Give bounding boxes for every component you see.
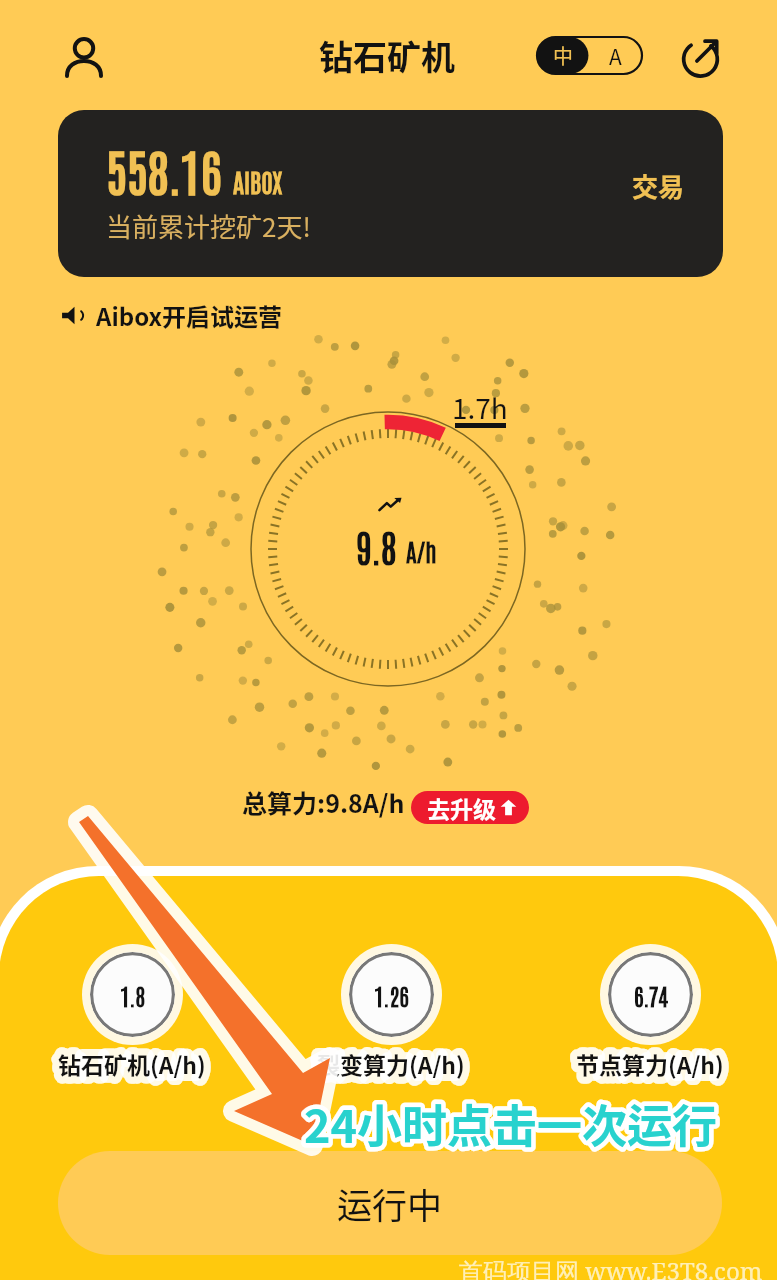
- staticText: 首码项目网 www.E3T8.com: [459, 1254, 763, 1280]
- staticText: 钻石矿机(A/h): [58, 1047, 206, 1080]
- staticText: 24小时点击一次运行: [304, 1091, 718, 1156]
- staticText: 钻石矿机(A/h): [58, 1047, 206, 1080]
- staticText: 总算力:9.8A/h: [242, 784, 405, 820]
- button[interactable]: Aibox开启试运营: [61, 298, 777, 333]
- button[interactable]: 交易: [632, 167, 685, 205]
- button[interactable]: 1.26: [317, 942, 465, 1080]
- staticText: 1.7h: [452, 387, 508, 428]
- button[interactable]: 6.74: [576, 942, 724, 1080]
- button[interactable]: Profile: [65, 37, 103, 78]
- staticText: AIBOX: [233, 165, 283, 197]
- staticText: 去升级: [427, 791, 496, 824]
- staticText: A/h: [406, 535, 437, 566]
- staticText: A: [609, 41, 622, 71]
- staticText: 9.8: [356, 522, 397, 570]
- staticText: 裂变算力(A/h): [317, 1047, 465, 1080]
- staticText: 钻石矿机: [319, 31, 455, 80]
- button[interactable]: 去升级: [411, 791, 529, 824]
- staticText: 1.8: [120, 980, 146, 1010]
- staticText: 交易: [632, 167, 685, 205]
- staticText: 节点算力(A/h): [576, 1047, 724, 1080]
- staticText: 1.26: [374, 980, 409, 1010]
- staticText: 558.16: [106, 137, 222, 202]
- button[interactable]: 运行中: [58, 1151, 722, 1255]
- staticText: 节点算力(A/h): [576, 1047, 724, 1080]
- button[interactable]: 中: [537, 37, 642, 74]
- staticText: Aibox开启试运营: [96, 298, 282, 333]
- staticText: 裂变算力(A/h): [317, 1047, 465, 1080]
- staticText: 中: [553, 41, 573, 70]
- staticText: 24小时点击一次运行: [304, 1091, 718, 1156]
- button[interactable]: 558.16: [58, 110, 723, 277]
- staticText: 当前累计挖矿2天!: [106, 207, 311, 245]
- staticText: 6.74: [634, 980, 668, 1010]
- button[interactable]: Share: [678, 34, 723, 79]
- staticText: 运行中: [337, 1178, 443, 1229]
- button[interactable]: 1.8: [58, 942, 206, 1080]
